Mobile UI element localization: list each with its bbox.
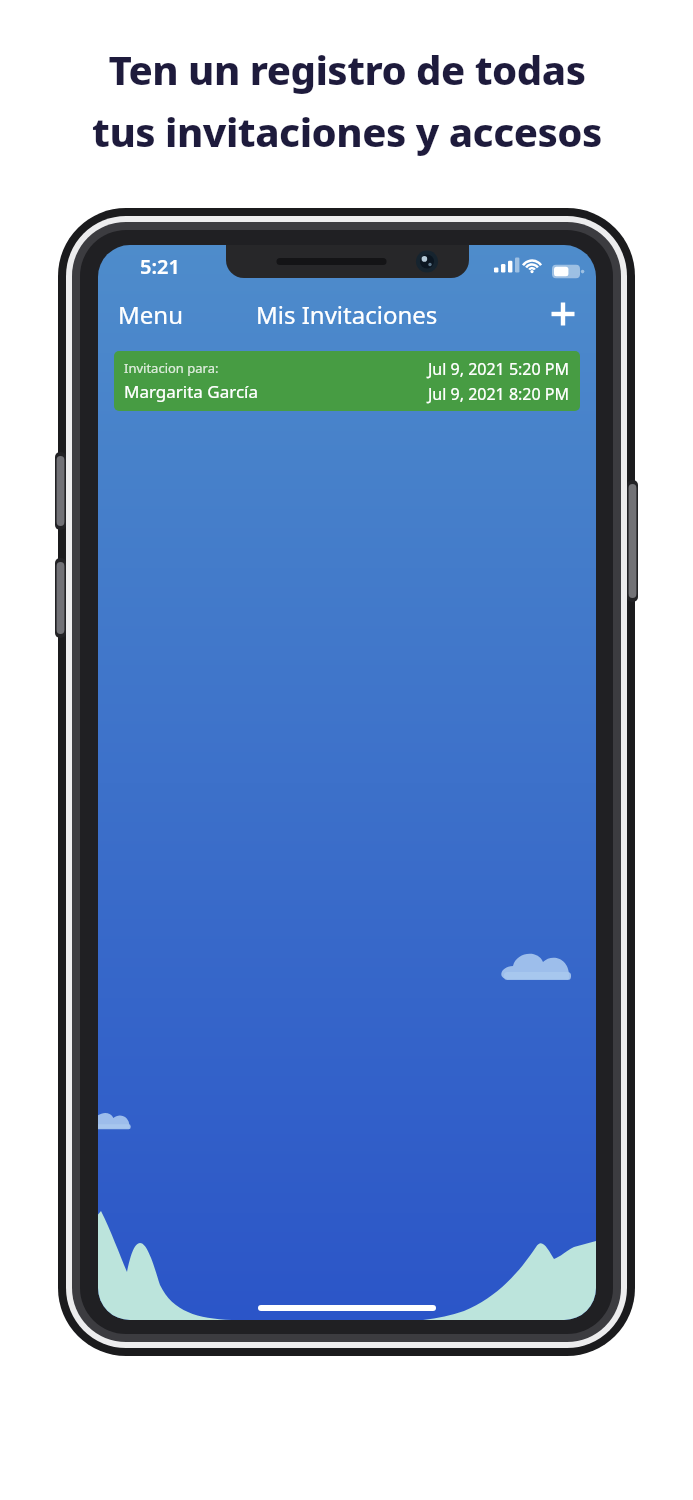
staticText: Jul 9, 2021 8:20 PM xyxy=(428,383,570,405)
staticText: Margarita García xyxy=(124,380,258,403)
button[interactable]: Menu xyxy=(98,290,195,339)
staticText: Ten un registro de todas xyxy=(108,42,586,96)
staticText: Jul 9, 2021 5:20 PM xyxy=(428,358,570,380)
staticText: Invitacion para: xyxy=(124,359,219,377)
button[interactable]: Add invitation xyxy=(542,293,584,335)
staticText: 5:21 xyxy=(140,253,180,280)
staticText: Menu xyxy=(118,298,183,331)
staticText: tus invitaciones y accesos xyxy=(92,104,602,158)
staticText: Mis Invitaciones xyxy=(256,298,438,331)
button[interactable]: Invitacion para: xyxy=(114,351,580,411)
